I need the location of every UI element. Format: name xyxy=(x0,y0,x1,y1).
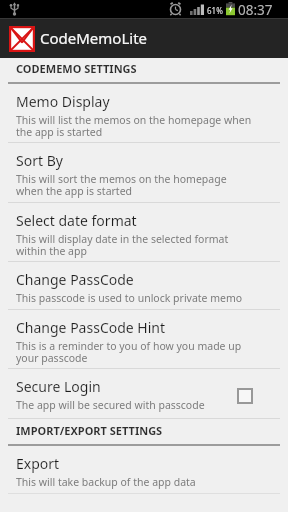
staticText: Change PassCode Hint xyxy=(16,318,166,337)
button[interactable]: Secure Login xyxy=(0,369,288,419)
button[interactable]: Select date format xyxy=(0,203,288,262)
button[interactable]: CodeMemoLite xyxy=(0,18,288,58)
staticText: Sort By xyxy=(16,151,63,170)
staticText: This will sort the memos on the homepage… xyxy=(16,172,227,198)
staticText: Secure Login xyxy=(16,377,101,396)
staticText: Change PassCode xyxy=(16,270,134,289)
staticText: IMPORT/EXPORT SETTINGS xyxy=(16,423,163,438)
staticText: CODEMEMO SETTINGS xyxy=(16,61,137,76)
button[interactable]: Sort By xyxy=(0,143,288,203)
staticText: Memo Display xyxy=(16,92,110,111)
staticText: 08:37 xyxy=(238,1,273,19)
staticText: This will list the memos on the homepage… xyxy=(16,113,252,139)
staticText: Export xyxy=(16,454,60,473)
staticText: 61% xyxy=(207,5,223,16)
button[interactable]: Change PassCode xyxy=(0,262,288,310)
staticText: This will display date in the selected f… xyxy=(16,232,229,258)
staticText: This passcode is used to unlock private … xyxy=(16,291,243,305)
button[interactable]: Memo Display xyxy=(0,84,288,143)
staticText: The app will be secured with passcode xyxy=(16,398,205,412)
staticText: Select date format xyxy=(16,211,137,230)
button[interactable]: Export xyxy=(0,446,288,494)
staticText: This is a reminder to you of how you mad… xyxy=(16,339,242,365)
staticText: This will take backup of the app data xyxy=(16,475,196,489)
button[interactable]: Change PassCode Hint xyxy=(0,310,288,369)
staticText: CodeMemoLite xyxy=(40,28,148,48)
